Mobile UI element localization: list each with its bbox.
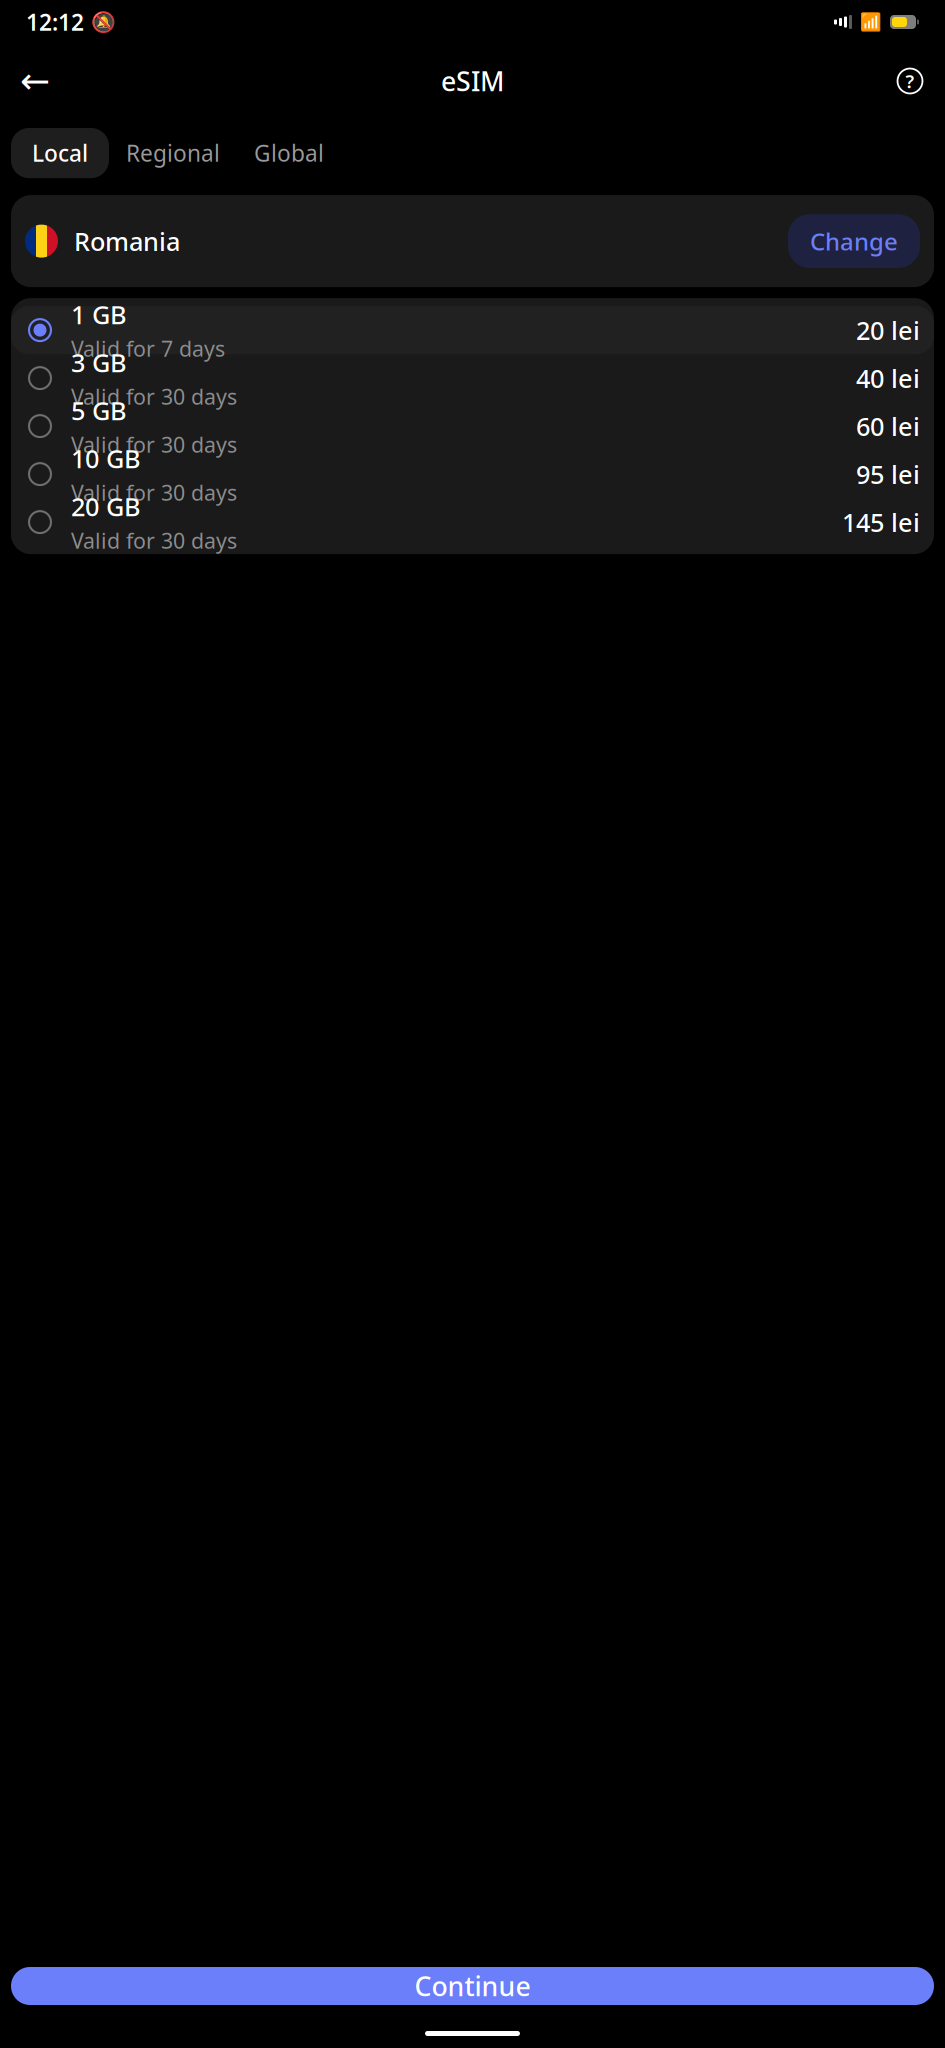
staticText: 60 lei bbox=[856, 409, 920, 443]
button[interactable]: Romania bbox=[11, 195, 934, 287]
staticText: Continue bbox=[414, 1968, 530, 2004]
button[interactable]: Regional bbox=[109, 128, 237, 178]
staticText: 10 GB bbox=[71, 442, 141, 475]
staticText: Change bbox=[810, 225, 898, 257]
staticText: ← bbox=[20, 61, 50, 101]
staticText: 📶 bbox=[860, 12, 882, 32]
staticText: Global bbox=[254, 138, 324, 168]
staticText: eSIM bbox=[441, 63, 504, 99]
button[interactable]: 10 GB bbox=[11, 450, 934, 498]
staticText: 5 GB bbox=[71, 394, 127, 427]
staticText: ? bbox=[905, 69, 914, 93]
staticText: 🔕 bbox=[91, 11, 116, 33]
button[interactable]: Global bbox=[237, 128, 341, 178]
staticText: 95 lei bbox=[856, 457, 920, 491]
button[interactable]: 5 GB bbox=[11, 402, 934, 450]
button[interactable]: Back bbox=[12, 58, 58, 104]
button[interactable]: Continue bbox=[11, 1967, 934, 2005]
staticText: 145 lei bbox=[842, 505, 920, 539]
staticText: 12:12 bbox=[26, 7, 84, 37]
staticText: Regional bbox=[126, 138, 220, 168]
staticText: 1 GB bbox=[71, 298, 127, 331]
staticText: Valid for 7 days bbox=[71, 334, 225, 363]
staticText: Local bbox=[32, 138, 88, 168]
staticText: 40 lei bbox=[856, 361, 920, 395]
staticText: Valid for 30 days bbox=[71, 382, 237, 411]
staticText: Valid for 30 days bbox=[71, 526, 237, 555]
staticText: Valid for 30 days bbox=[71, 430, 237, 459]
button[interactable]: Local bbox=[11, 128, 109, 178]
button[interactable]: Help bbox=[887, 58, 933, 104]
button[interactable]: 20 GB bbox=[11, 498, 934, 546]
button[interactable]: 3 GB bbox=[11, 354, 934, 402]
staticText: Valid for 30 days bbox=[71, 478, 237, 507]
staticText: 20 lei bbox=[856, 313, 920, 347]
button[interactable]: 1 GB bbox=[11, 306, 934, 354]
staticText: 20 GB bbox=[71, 490, 141, 523]
staticText: 3 GB bbox=[71, 346, 127, 379]
staticText: Romania bbox=[74, 224, 180, 258]
